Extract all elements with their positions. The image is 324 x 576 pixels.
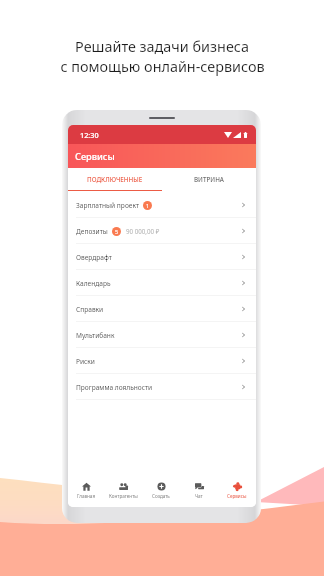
staticText: Решайте задачи бизнеса: [75, 37, 249, 57]
button[interactable]: Мультибанк: [68, 322, 256, 348]
button[interactable]: ВИТРИНА: [162, 168, 256, 191]
staticText: Главная: [77, 493, 96, 499]
staticText: Овердрафт: [76, 253, 112, 262]
staticText: Зарплатный проект: [76, 201, 139, 210]
button[interactable]: Создать: [142, 479, 180, 507]
button[interactable]: Чат: [180, 479, 218, 507]
staticText: 12:30: [80, 130, 99, 140]
staticText: Депозиты: [76, 227, 108, 236]
staticText: с помощью онлайн-сервисов: [60, 57, 265, 77]
button[interactable]: Контрагенты: [105, 479, 142, 507]
button[interactable]: Овердрафт: [68, 244, 256, 270]
button[interactable]: Сервисы: [218, 479, 256, 507]
button[interactable]: Справки: [68, 296, 256, 322]
staticText: Чат: [195, 493, 203, 499]
staticText: Создать: [152, 493, 170, 499]
button[interactable]: Программа лояльности: [68, 374, 256, 400]
staticText: Сервисы: [227, 493, 247, 499]
staticText: 1: [146, 202, 150, 209]
button[interactable]: Депозиты: [68, 218, 256, 244]
button[interactable]: Главная: [68, 479, 105, 507]
button[interactable]: ПОДКЛЮЧЕННЫЕ: [68, 168, 162, 191]
button[interactable]: Риски: [68, 348, 256, 374]
staticText: 5: [115, 228, 119, 235]
staticText: Мультибанк: [76, 331, 115, 340]
button[interactable]: Зарплатный проект: [68, 192, 256, 218]
staticText: Справки: [76, 305, 104, 314]
staticText: ПОДКЛЮЧЕННЫЕ: [87, 175, 143, 184]
staticText: Сервисы: [75, 150, 115, 163]
staticText: Риски: [76, 357, 95, 366]
staticText: Программа лояльности: [76, 383, 153, 392]
button[interactable]: Календарь: [68, 270, 256, 296]
staticText: 90 000,00 ₽: [126, 227, 160, 235]
staticText: ВИТРИНА: [194, 175, 224, 184]
staticText: Календарь: [76, 279, 111, 288]
staticText: Контрагенты: [109, 493, 138, 499]
